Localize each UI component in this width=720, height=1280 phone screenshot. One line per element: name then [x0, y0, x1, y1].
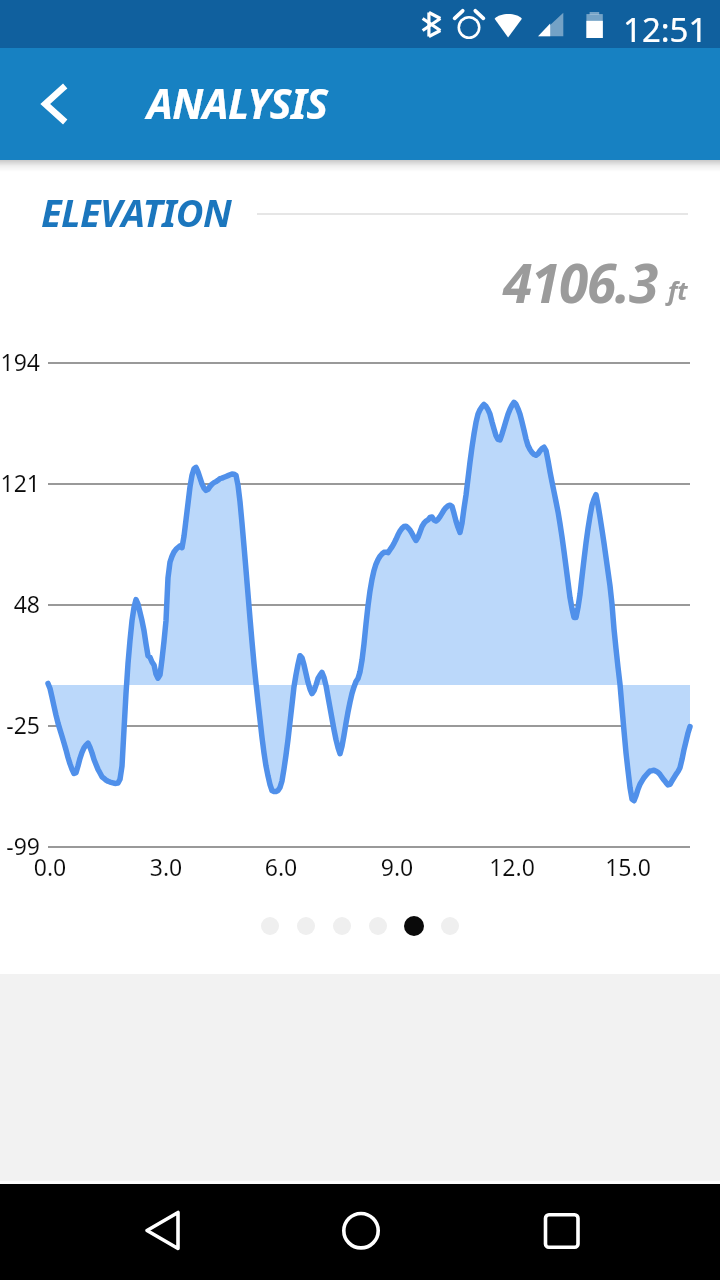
staticText: 48 [0, 588, 40, 619]
staticText: 3.0 [126, 851, 206, 882]
staticText: 121 [0, 467, 40, 498]
staticText: ft [668, 273, 688, 307]
staticText: 194 [0, 346, 40, 377]
staticText: 12.0 [472, 851, 552, 882]
button[interactable]: Page 4 [369, 917, 387, 935]
button[interactable]: Home [318, 1190, 402, 1274]
staticText: 4106.3 [503, 246, 658, 318]
button[interactable]: Page 1 [261, 917, 279, 935]
staticText: -25 [0, 709, 40, 740]
staticText: ANALYSIS [147, 75, 328, 131]
staticText: ELEVATION [41, 186, 232, 238]
button[interactable]: Back [120, 1190, 204, 1274]
button[interactable]: Page 5 [404, 916, 424, 936]
staticText: 15.0 [588, 851, 668, 882]
button[interactable]: Page 3 [333, 917, 351, 935]
button[interactable]: Back [18, 68, 90, 140]
staticText: -99 [0, 830, 40, 861]
button[interactable]: Page 6 [441, 917, 459, 935]
button[interactable]: Page 2 [297, 917, 315, 935]
staticText: 0.0 [10, 851, 90, 882]
staticText: 12:51 [623, 7, 708, 52]
button[interactable]: Recents [518, 1190, 602, 1274]
staticText: 6.0 [241, 851, 321, 882]
staticText: 9.0 [357, 851, 437, 882]
